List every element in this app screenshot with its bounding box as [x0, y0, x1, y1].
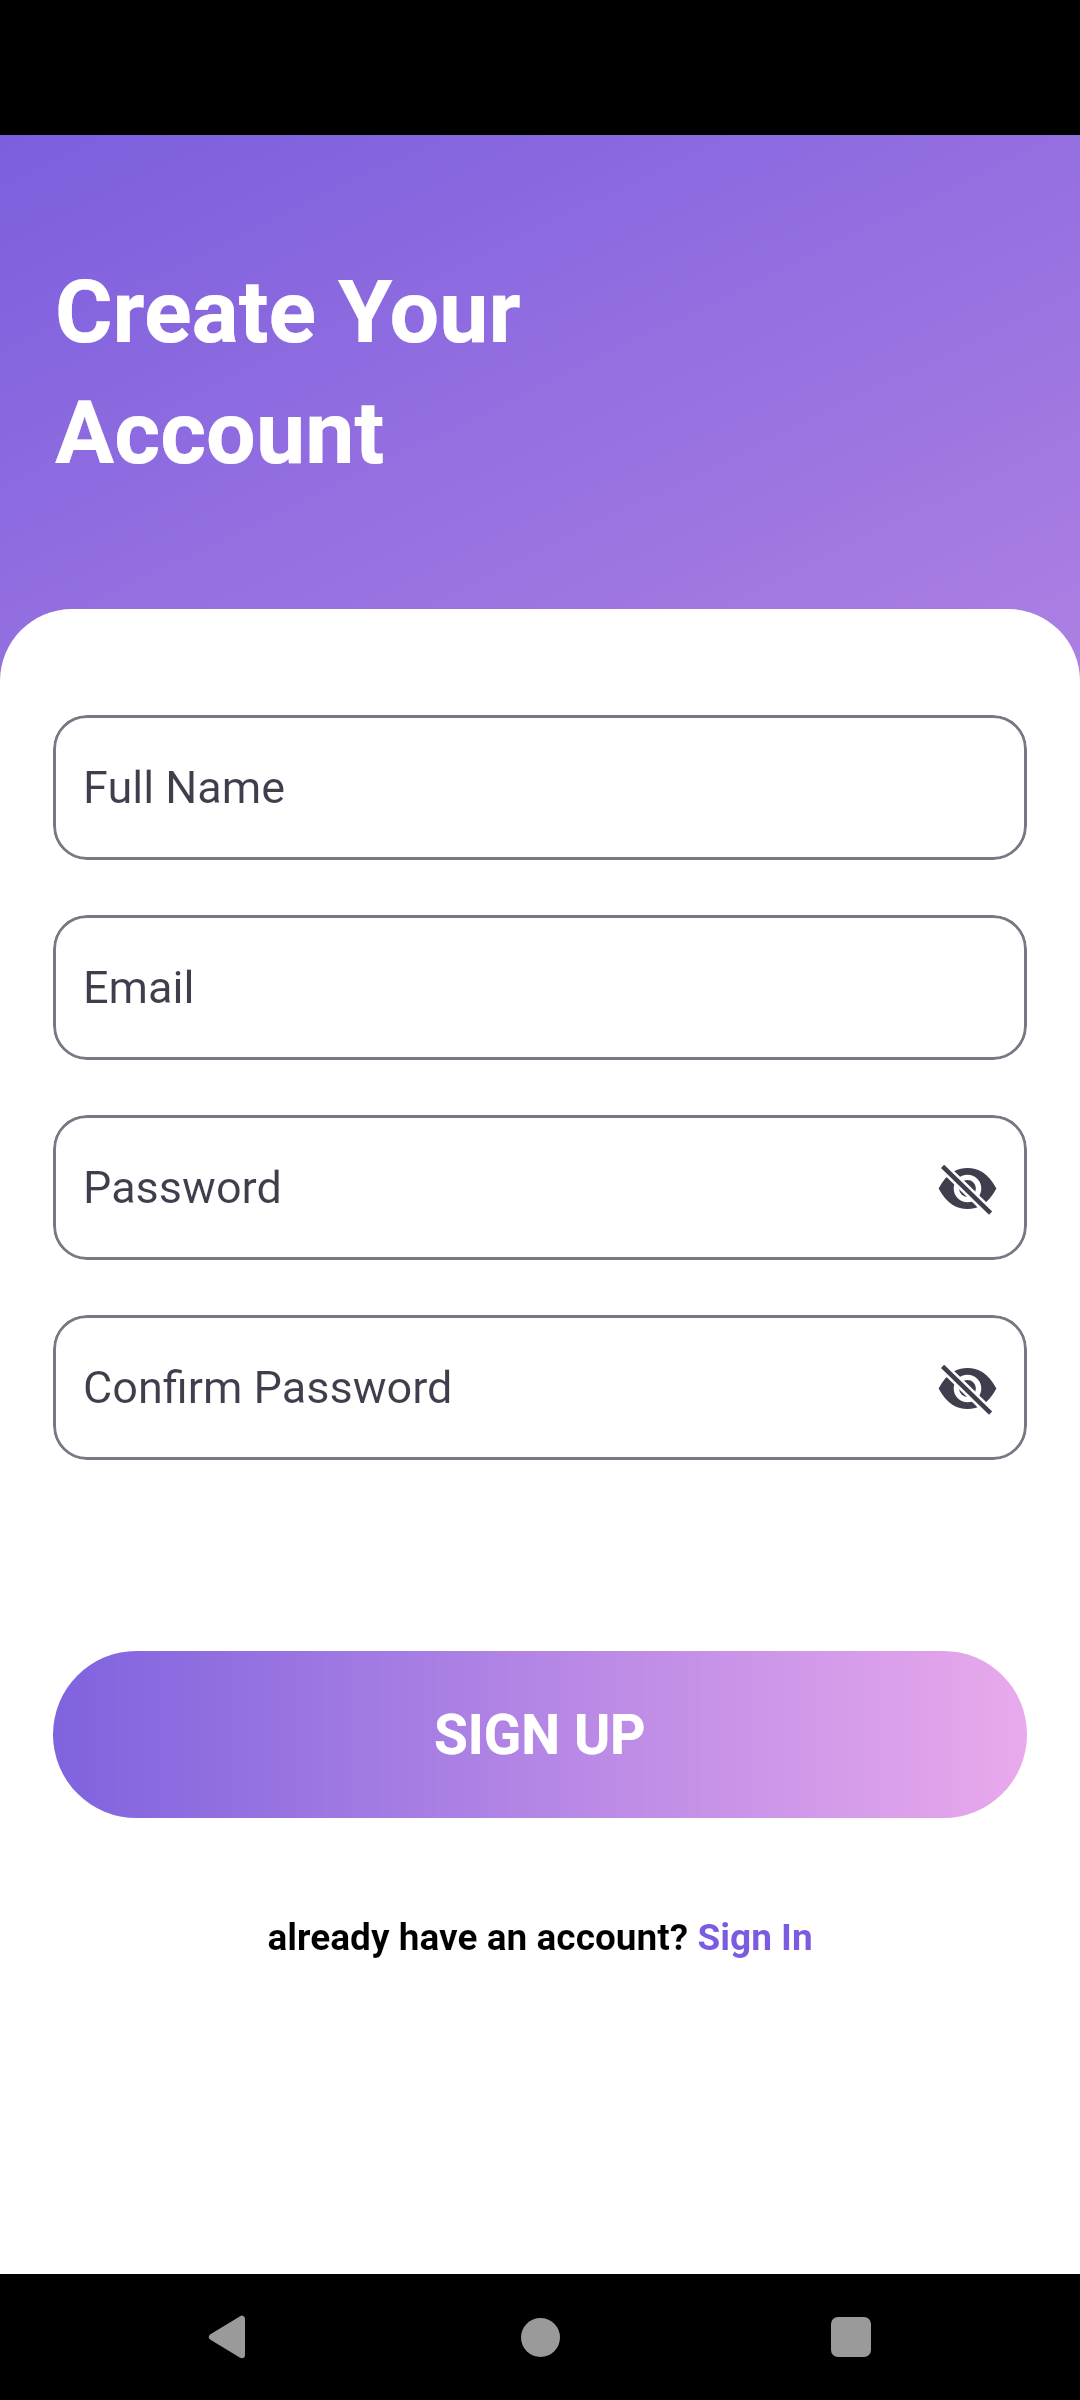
button[interactable]: Password: [53, 1115, 1027, 1260]
staticText: Create Your Account: [55, 260, 521, 484]
staticText: Email: [83, 961, 195, 1014]
button[interactable]: Email: [53, 915, 1027, 1060]
button[interactable]: Confirm Password: [53, 1315, 1027, 1460]
button[interactable]: Show password: [929, 1350, 1005, 1426]
button[interactable]: SIGN UP: [53, 1651, 1027, 1818]
staticText: Confirm Password: [83, 1361, 453, 1414]
staticText: Full Name: [83, 761, 286, 814]
staticText: Password: [83, 1161, 282, 1214]
button[interactable]: Recent apps: [791, 2274, 911, 2400]
button[interactable]: already have an account? Sign In: [267, 1916, 813, 1959]
staticText: SIGN UP: [434, 1703, 646, 1767]
button[interactable]: Full Name: [53, 715, 1027, 860]
button[interactable]: Home: [480, 2274, 600, 2400]
button[interactable]: Show password: [929, 1150, 1005, 1226]
button[interactable]: Back: [166, 2274, 286, 2400]
